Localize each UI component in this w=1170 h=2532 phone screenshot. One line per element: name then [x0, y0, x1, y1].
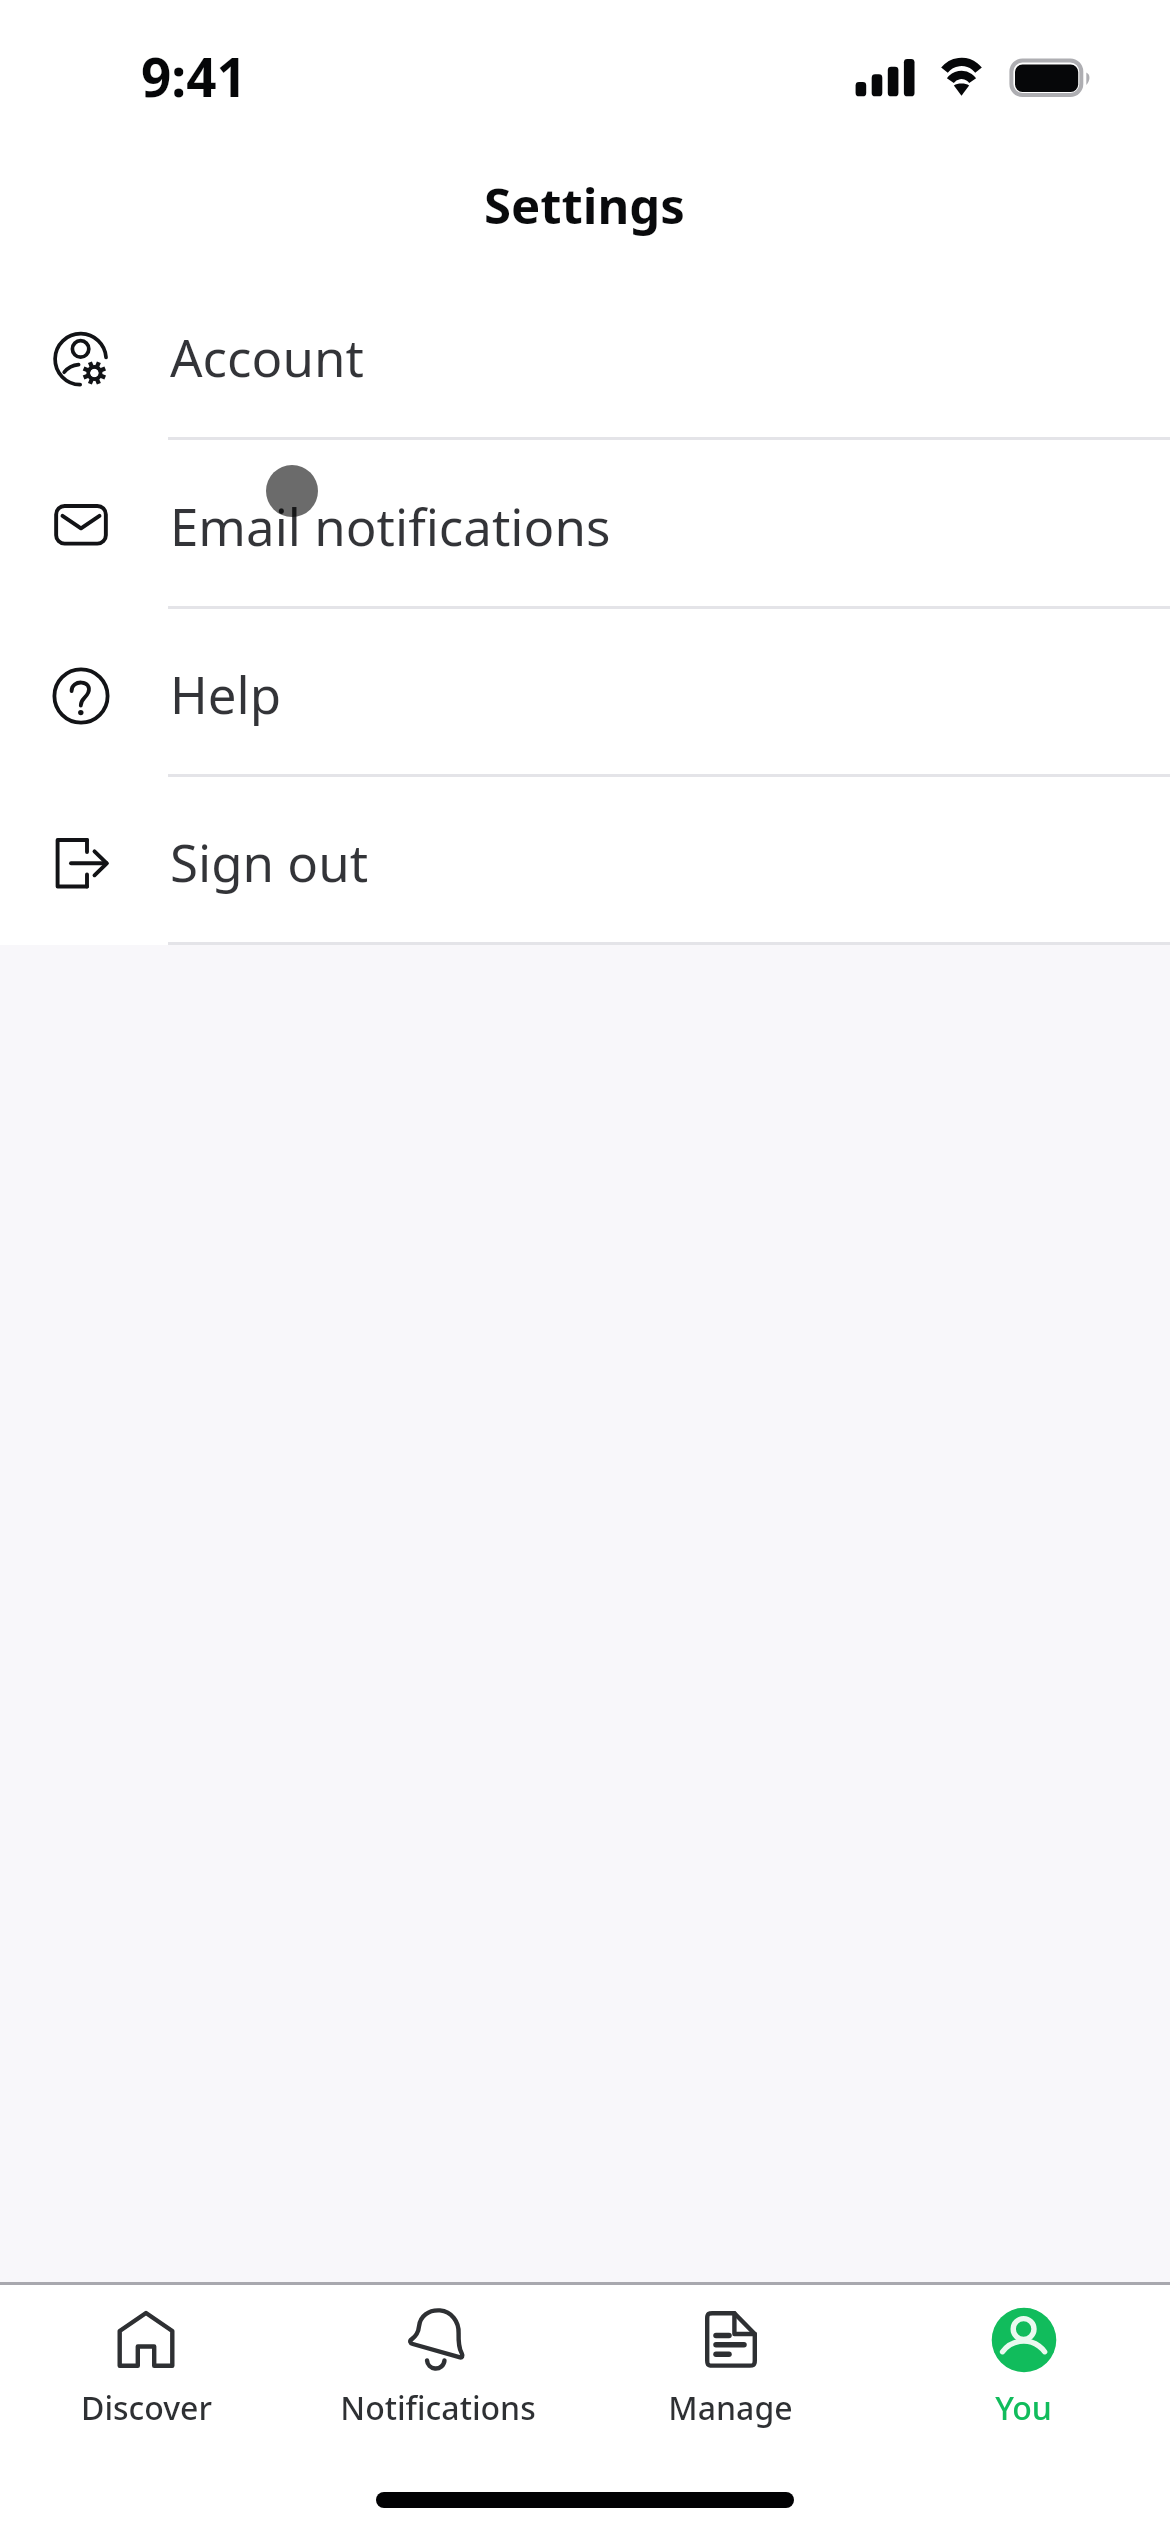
button[interactable]: Account — [0, 271, 1170, 437]
button[interactable]: Sign out — [0, 777, 1170, 942]
staticText: Sign out — [170, 827, 369, 896]
button[interactable]: Manage — [584, 2285, 877, 2448]
staticText: You — [995, 2386, 1052, 2430]
staticText: Notifications — [340, 2386, 536, 2430]
staticText: Discover — [81, 2386, 212, 2430]
button[interactable]: Help — [0, 609, 1170, 774]
button[interactable]: Email notifications — [0, 440, 1170, 606]
staticText: Settings — [484, 172, 685, 239]
button[interactable]: Discover — [0, 2285, 292, 2448]
button[interactable]: Notifications — [292, 2285, 584, 2448]
button[interactable]: You — [877, 2285, 1170, 2448]
staticText: 9:41 — [141, 40, 247, 112]
staticText: Email notifications — [170, 491, 611, 560]
staticText: Account — [170, 322, 364, 391]
staticText: Manage — [668, 2386, 793, 2430]
staticText: Help — [170, 659, 282, 728]
